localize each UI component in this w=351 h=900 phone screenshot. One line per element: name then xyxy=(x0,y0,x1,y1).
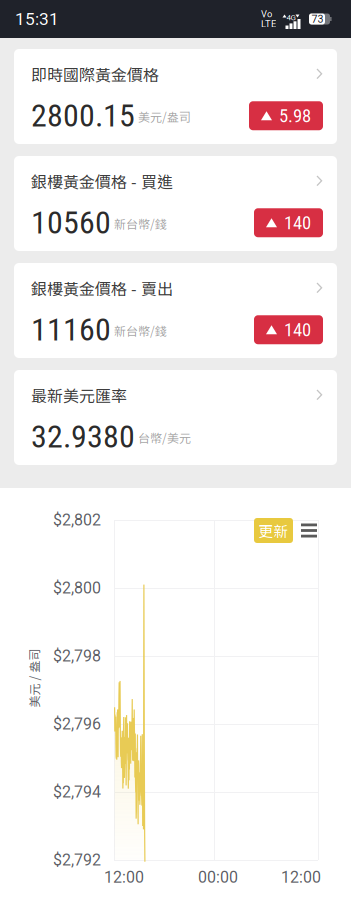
staticText: $2,796 xyxy=(53,715,101,733)
staticText: 15:31 xyxy=(15,9,59,29)
button[interactable]: 即時國際黃金價格 xyxy=(14,49,337,144)
staticText: 5.98 xyxy=(279,105,311,127)
staticText: 00:00 xyxy=(198,868,238,887)
button[interactable]: 更新 xyxy=(254,518,293,543)
staticText: 2800.15 xyxy=(31,97,135,134)
staticText: 10560 xyxy=(31,204,111,241)
staticText: 11160 xyxy=(31,311,111,348)
staticText: 最新美元匯率 xyxy=(31,383,127,407)
button[interactable]: 最新美元匯率 xyxy=(14,370,337,465)
staticText: 銀樓黃金價格 - 買進 xyxy=(31,169,173,193)
button[interactable]: 銀樓黃金價格 - 賣出 xyxy=(14,263,337,358)
staticText: $2,794 xyxy=(53,783,101,801)
staticText: 美元 / 盎司 xyxy=(4,669,63,687)
staticText: 73 xyxy=(311,13,323,25)
staticText: 32.9380 xyxy=(31,418,135,455)
staticText: 即時國際黃金價格 xyxy=(31,62,159,86)
staticText: LTE xyxy=(261,18,276,29)
staticText: Vo xyxy=(261,9,272,19)
button[interactable]: 銀樓黃金價格 - 買進 xyxy=(14,156,337,251)
staticText: 銀樓黃金價格 - 賣出 xyxy=(31,276,173,300)
staticText: 140 xyxy=(284,319,311,341)
staticText: 12:00 xyxy=(281,868,321,887)
staticText: $2,802 xyxy=(53,511,101,529)
staticText: 美元/盎司 xyxy=(138,108,191,125)
staticText: 更新 xyxy=(258,520,288,541)
staticText: 台幣/美元 xyxy=(138,429,191,446)
staticText: $2,798 xyxy=(53,647,101,665)
staticText: $2,792 xyxy=(53,851,101,869)
staticText: 新台幣/錢 xyxy=(114,215,167,232)
staticText: 4G xyxy=(286,13,295,22)
staticText: 140 xyxy=(284,212,311,234)
staticText: $2,800 xyxy=(53,579,101,597)
staticText: 新台幣/錢 xyxy=(114,322,167,339)
button[interactable]: Chart options xyxy=(298,520,320,540)
staticText: 12:00 xyxy=(104,868,144,887)
